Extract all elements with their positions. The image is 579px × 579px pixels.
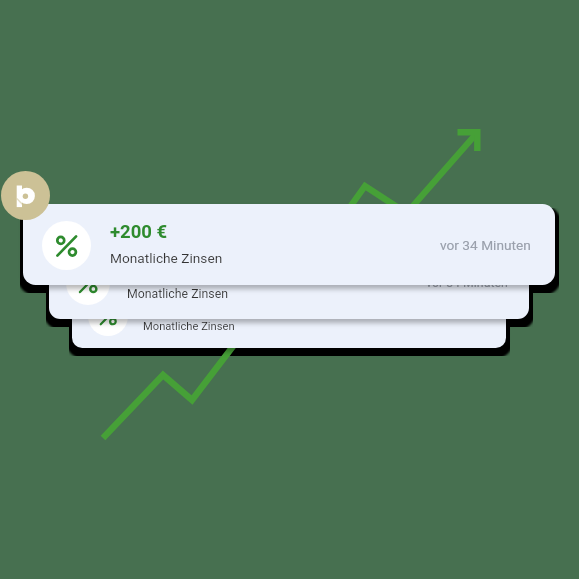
staticText: vor 34 Minuten — [412, 309, 487, 322]
staticText: +200 € — [143, 296, 190, 314]
staticText: Monatliche Zinsen — [127, 287, 229, 301]
button[interactable]: +200 € — [49, 246, 529, 319]
staticText: vor 34 Minuten — [426, 276, 508, 290]
button[interactable]: +200 € — [72, 282, 506, 348]
staticText: vor 34 Minuten — [440, 237, 531, 253]
staticText: Monatliche Zinsen — [143, 320, 235, 333]
button[interactable]: Bank logo — [1, 171, 50, 220]
staticText: +200 € — [127, 261, 179, 281]
staticText: +200 € — [110, 221, 168, 243]
button[interactable]: +200 € — [23, 204, 555, 285]
staticText: Monatliche Zinsen — [110, 250, 223, 266]
